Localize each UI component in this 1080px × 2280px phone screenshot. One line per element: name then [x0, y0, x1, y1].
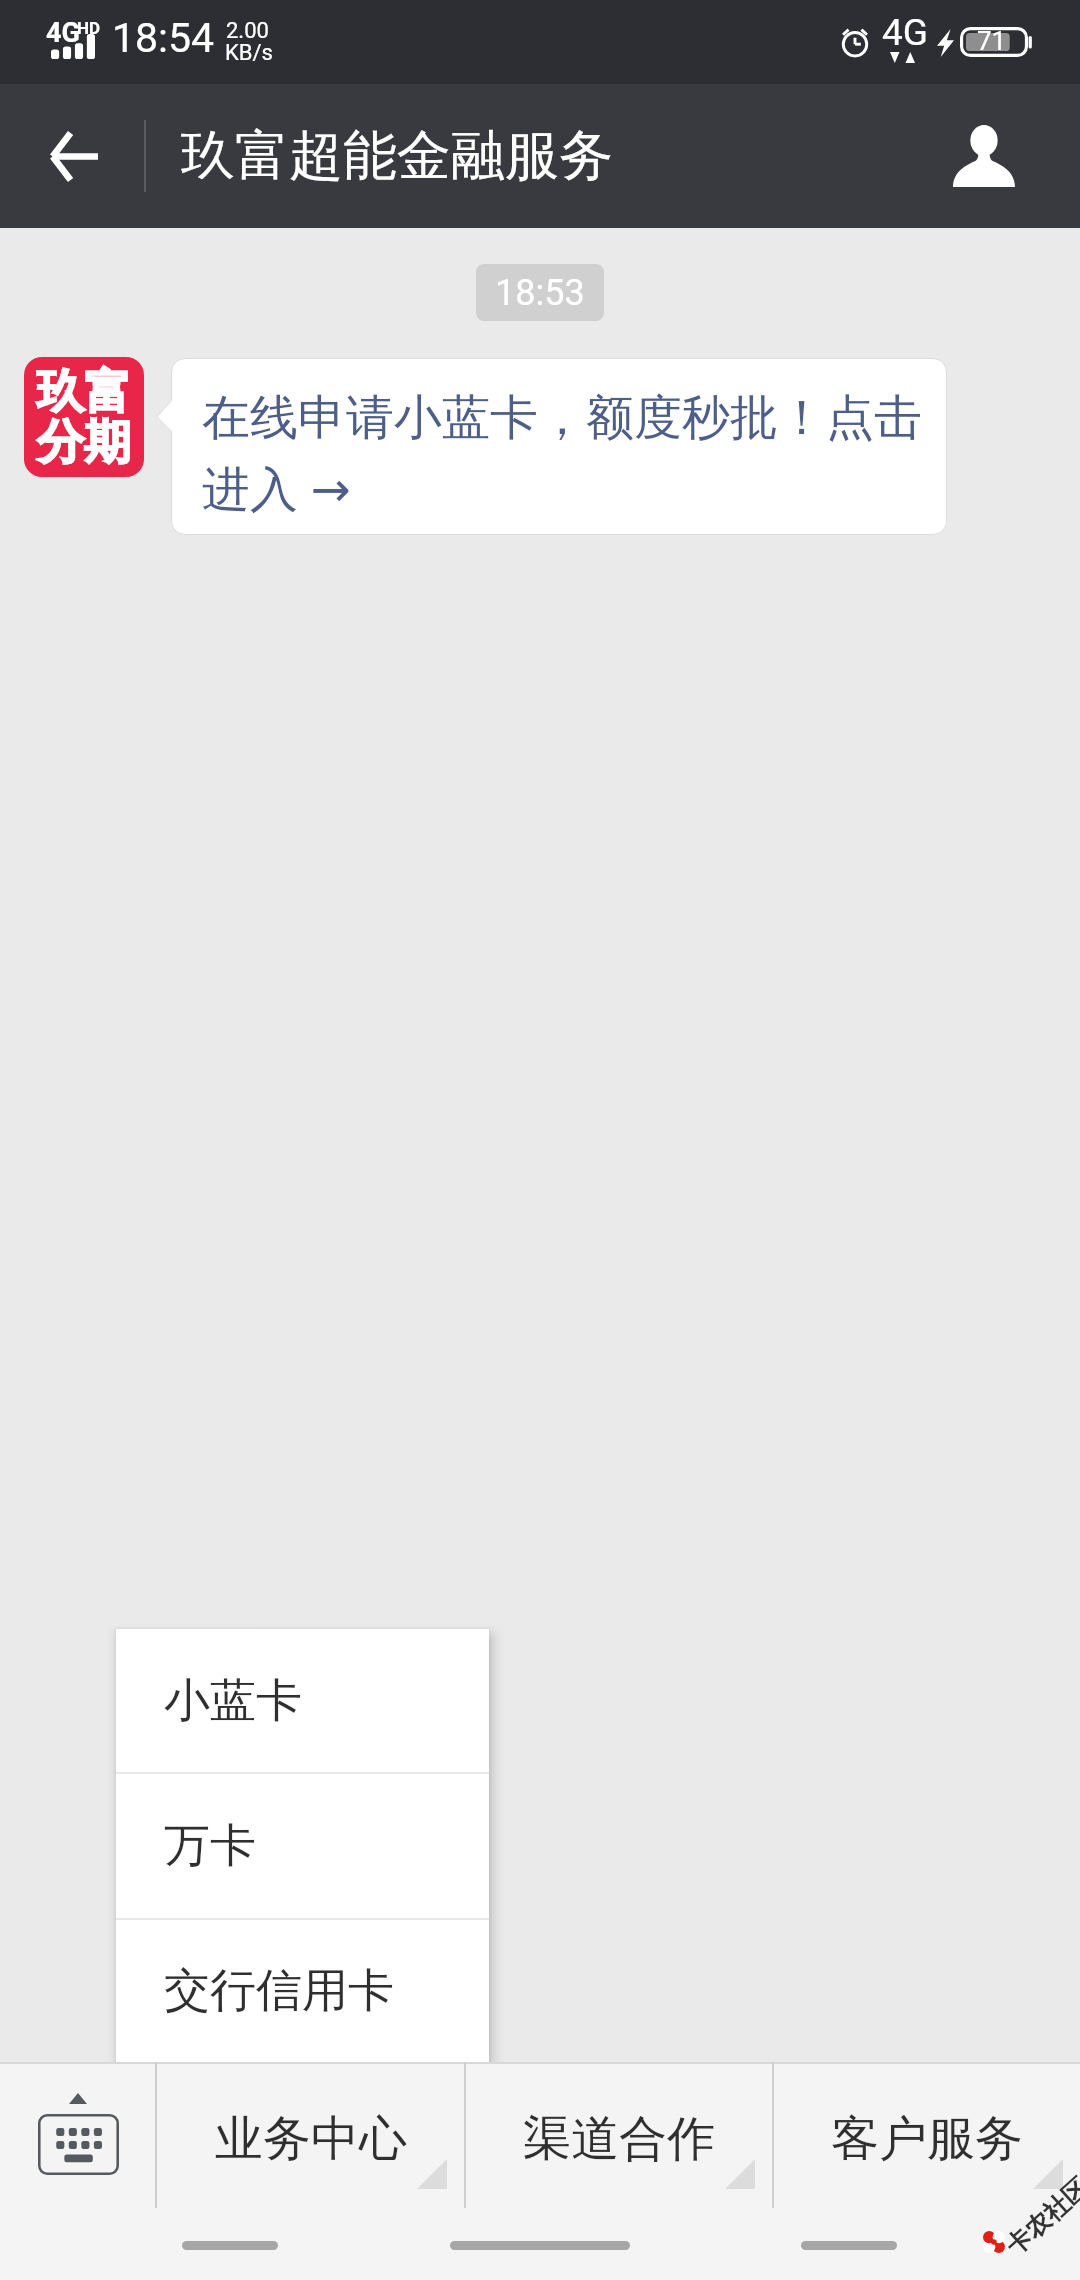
button[interactable]: Recents	[801, 2241, 897, 2250]
staticText: 在线申请小蓝卡，额度秒批！点击	[202, 388, 922, 448]
staticText: 4G	[882, 11, 928, 54]
button[interactable]: Avatar	[24, 357, 144, 477]
staticText: 玖富	[37, 363, 131, 422]
staticText: 渠道合作	[523, 2109, 715, 2169]
button[interactable]: 万卡	[116, 1774, 489, 1918]
button[interactable]: 交行信用卡	[116, 1920, 489, 2062]
staticText: 交行信用卡	[164, 1962, 394, 2020]
staticText: 卡农社区	[999, 2171, 1080, 2261]
staticText: HD	[77, 18, 101, 38]
button[interactable]: Home	[450, 2241, 630, 2250]
staticText: 客户服务	[831, 2109, 1023, 2169]
staticText: KB/s	[225, 40, 273, 66]
staticText: 业务中心	[215, 2109, 407, 2169]
button[interactable]: Keyboard	[0, 2062, 155, 2208]
button[interactable]: 在线申请小蓝卡，额度秒批！点击	[156, 358, 947, 535]
button[interactable]: Back	[0, 84, 146, 228]
button[interactable]: Profile	[934, 84, 1080, 228]
staticText: 4G	[46, 17, 80, 49]
button[interactable]: 业务中心	[157, 2062, 464, 2208]
button[interactable]: 小蓝卡	[116, 1629, 489, 1772]
staticText: 进入 →	[202, 455, 351, 521]
staticText: 万卡	[164, 1817, 256, 1875]
button[interactable]: 渠道合作	[466, 2062, 772, 2208]
staticText: 玖富超能金融服务	[181, 122, 613, 190]
button[interactable]: 客户服务	[774, 2062, 1080, 2208]
staticText: 小蓝卡	[164, 1672, 302, 1730]
button[interactable]: Back	[182, 2241, 278, 2250]
staticText: 71	[977, 26, 1007, 56]
staticText: 分期	[37, 413, 131, 472]
staticText: 2.00	[226, 18, 269, 44]
staticText: 18:53	[495, 272, 585, 314]
staticText: 18:54	[112, 14, 215, 62]
